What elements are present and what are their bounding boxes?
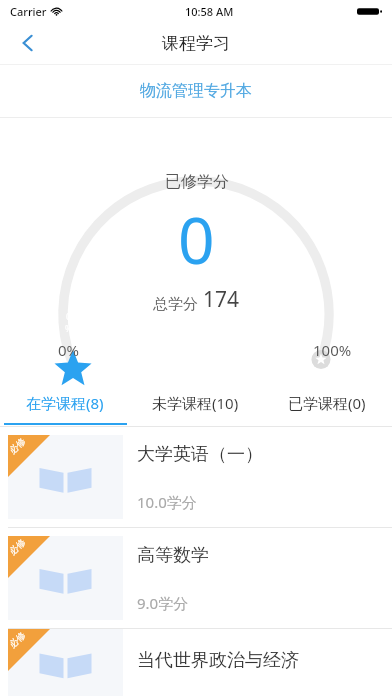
staticText: 10:58 AM <box>185 4 234 19</box>
staticText: 未学课程(10) <box>152 393 239 413</box>
button[interactable]: Back <box>8 23 48 63</box>
button[interactable]: 必修 <box>0 629 392 696</box>
button[interactable]: 已学课程(0) <box>261 383 392 423</box>
staticText: 总学分 <box>153 295 198 314</box>
staticText: 物流管理专升本 <box>140 81 252 101</box>
staticText: 当代世界政治与经济 <box>137 649 299 672</box>
staticText: 必修 <box>8 629 27 650</box>
staticText: 已学课程(0) <box>288 393 366 413</box>
staticText: 必修 <box>8 435 27 456</box>
staticText: 必修 <box>8 536 27 557</box>
staticText: 100% <box>313 340 352 360</box>
button[interactable]: 必修 <box>0 427 392 527</box>
staticText: % <box>65 322 73 334</box>
button[interactable]: 物流管理专升本 <box>0 65 392 117</box>
staticText: 在学课程(8) <box>26 393 104 413</box>
staticText: 0 <box>178 196 215 283</box>
staticText: Carrier <box>10 4 47 19</box>
staticText: 课程学习 <box>162 33 230 54</box>
staticText: 已修学分 <box>165 172 229 192</box>
button[interactable]: 未学课程(10) <box>130 383 261 423</box>
staticText: 174 <box>203 285 240 314</box>
staticText: 大学英语（一） <box>137 443 263 466</box>
staticText: 10.0学分 <box>137 492 197 512</box>
staticText: 0% <box>58 340 80 360</box>
staticText: 高等数学 <box>137 544 209 567</box>
staticText: 0 <box>66 310 72 322</box>
button[interactable]: 必修 <box>0 528 392 628</box>
staticText: 9.0学分 <box>137 593 189 613</box>
button[interactable]: 在学课程(8) <box>0 383 130 423</box>
